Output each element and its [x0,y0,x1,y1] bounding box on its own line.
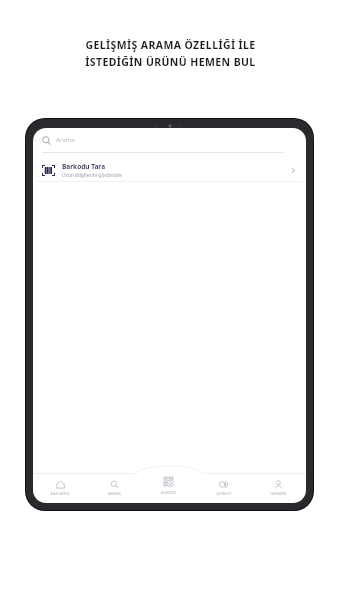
button[interactable]: HESABIM [251,473,306,503]
staticText: Ürün bilgilerini görüntüle [62,172,122,179]
staticText: İSTEDİĞİN ÜRÜNÜ HEMEN BUL [85,55,256,69]
staticText: HESABIM [270,491,287,496]
button[interactable]: ARAMA [87,473,141,503]
button[interactable]: Arama [33,128,306,152]
staticText: LOYALTY [216,491,232,496]
button[interactable]: Barkodu Tara [33,159,306,181]
button[interactable]: ANA SAYFA [33,473,87,503]
staticText: GELİŞMİŞ ARAMA ÖZELLİĞİ İLE [85,38,256,52]
staticText: BARKOD [161,490,176,495]
staticText: Barkodu Tara [62,162,106,171]
button[interactable]: LOYALTY [196,473,251,503]
staticText: Arama [56,136,75,144]
staticText: ARAMA [108,491,121,496]
staticText: ANA SAYFA [50,491,70,496]
button[interactable]: BARKOD [141,473,196,503]
